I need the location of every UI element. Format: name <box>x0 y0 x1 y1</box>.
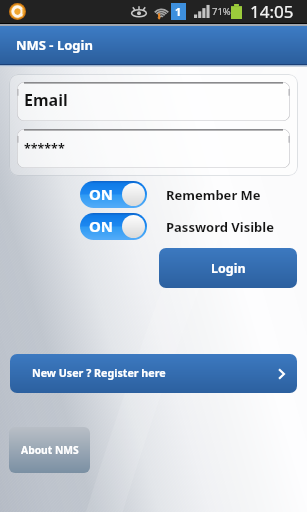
staticText: 71% <box>212 5 231 18</box>
staticText: New User ? Register here <box>32 366 166 381</box>
staticText: Remember Me <box>166 186 261 204</box>
button[interactable]: ****** <box>17 129 290 168</box>
staticText: 14:05 <box>250 0 294 23</box>
staticText: 1 <box>175 4 182 19</box>
button[interactable]: Login <box>159 248 297 288</box>
staticText: ****** <box>24 140 65 157</box>
staticText: NMS - Login <box>16 36 93 54</box>
staticText: Password Visible <box>166 218 274 236</box>
staticText: ON <box>89 184 114 204</box>
staticText: ON <box>89 216 114 236</box>
button[interactable]: Email <box>17 82 290 121</box>
staticText: Email <box>24 89 68 111</box>
button[interactable]: Password Visible toggle, on <box>80 213 147 240</box>
button[interactable]: Remember Me toggle, on <box>80 181 147 208</box>
staticText: Login <box>211 260 246 277</box>
button[interactable]: New User ? Register here <box>10 354 297 393</box>
button[interactable]: About NMS <box>9 427 90 473</box>
staticText: About NMS <box>21 443 79 457</box>
